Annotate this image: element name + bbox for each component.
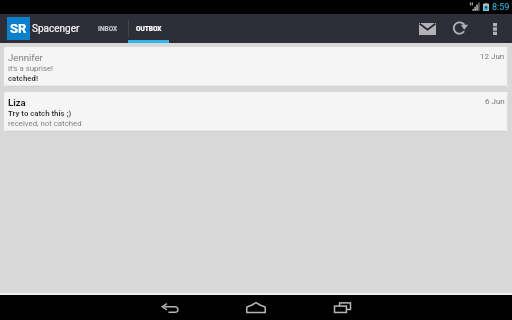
button[interactable]: Recent apps [312, 295, 372, 320]
staticText: Spacenger [32, 23, 80, 35]
button[interactable]: OUTBOX [128, 14, 169, 43]
staticText: it's a suprise! [8, 64, 54, 73]
button[interactable]: INBOX [87, 14, 128, 43]
button[interactable]: Compose message [411, 14, 443, 43]
button[interactable]: Refresh [445, 14, 477, 43]
button[interactable]: SR [7, 17, 30, 40]
staticText: 8:59 [492, 2, 510, 13]
staticText: SR [10, 21, 27, 36]
button[interactable]: More options [482, 14, 508, 43]
staticText: Jennifer [8, 52, 43, 63]
button[interactable]: Liza [4, 92, 508, 132]
button[interactable]: Jennifer [4, 47, 508, 87]
staticText: Try to catch this ;) [8, 109, 72, 118]
staticText: 12 Jun [480, 52, 505, 61]
staticText: Liza [8, 97, 26, 108]
staticText: received, not catched [8, 119, 82, 128]
staticText: catched! [8, 74, 39, 83]
staticText: 6 Jun [485, 97, 505, 106]
staticText: INBOX [98, 25, 118, 33]
button[interactable]: Home [226, 295, 286, 320]
button[interactable]: Back [140, 295, 200, 320]
staticText: OUTBOX [136, 25, 162, 33]
